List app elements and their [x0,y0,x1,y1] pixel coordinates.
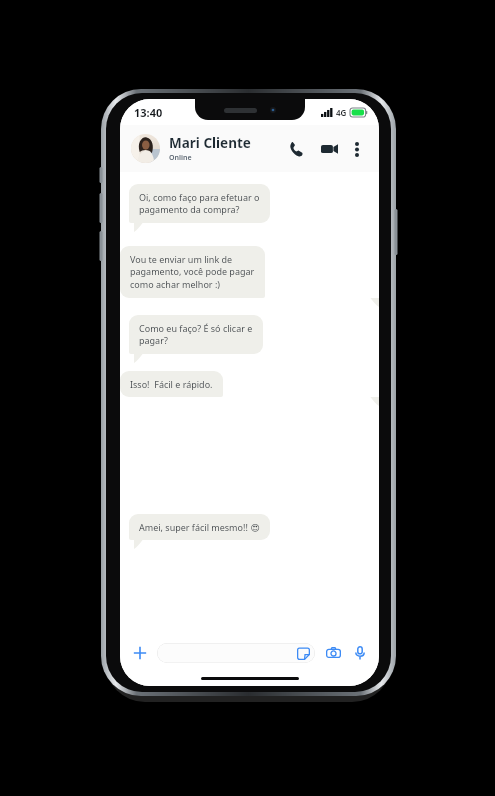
button[interactable]: Amei, super fácil mesmo!! 😍 [129,514,270,540]
staticText: 13:40 [134,105,163,120]
button[interactable]: Oi, como faço para efetuar o pagamento d… [129,184,270,223]
other: Stickers [297,647,310,660]
button[interactable]: Video call [316,136,342,162]
button[interactable]: More options [346,138,368,160]
button[interactable]: Como eu faço? É só clicar e pagar? [129,315,263,354]
staticText: 4G [336,107,347,118]
button[interactable]: Add attachment [129,642,151,664]
staticText: Isso! Fácil e rápido. [130,378,213,390]
button[interactable]: Contact photo [131,134,160,163]
staticText: Oi, como faço para efetuar o pagamento d… [139,191,260,216]
button[interactable]: Call [283,136,309,162]
button[interactable]: Isso! Fácil e rápido. [120,371,223,397]
button[interactable]: Stickers [157,643,315,663]
button[interactable]: Voice message [350,643,370,663]
staticText: Mari Cliente [169,134,251,152]
staticText: Amei, super fácil mesmo!! 😍 [139,521,260,533]
staticText: Online [169,153,192,163]
button[interactable]: Vou te enviar um link de pagamento, você… [120,246,265,298]
staticText: Como eu faço? É só clicar e pagar? [139,322,253,347]
staticText: Vou te enviar um link de pagamento, você… [130,253,255,291]
button[interactable]: Camera [323,643,343,663]
